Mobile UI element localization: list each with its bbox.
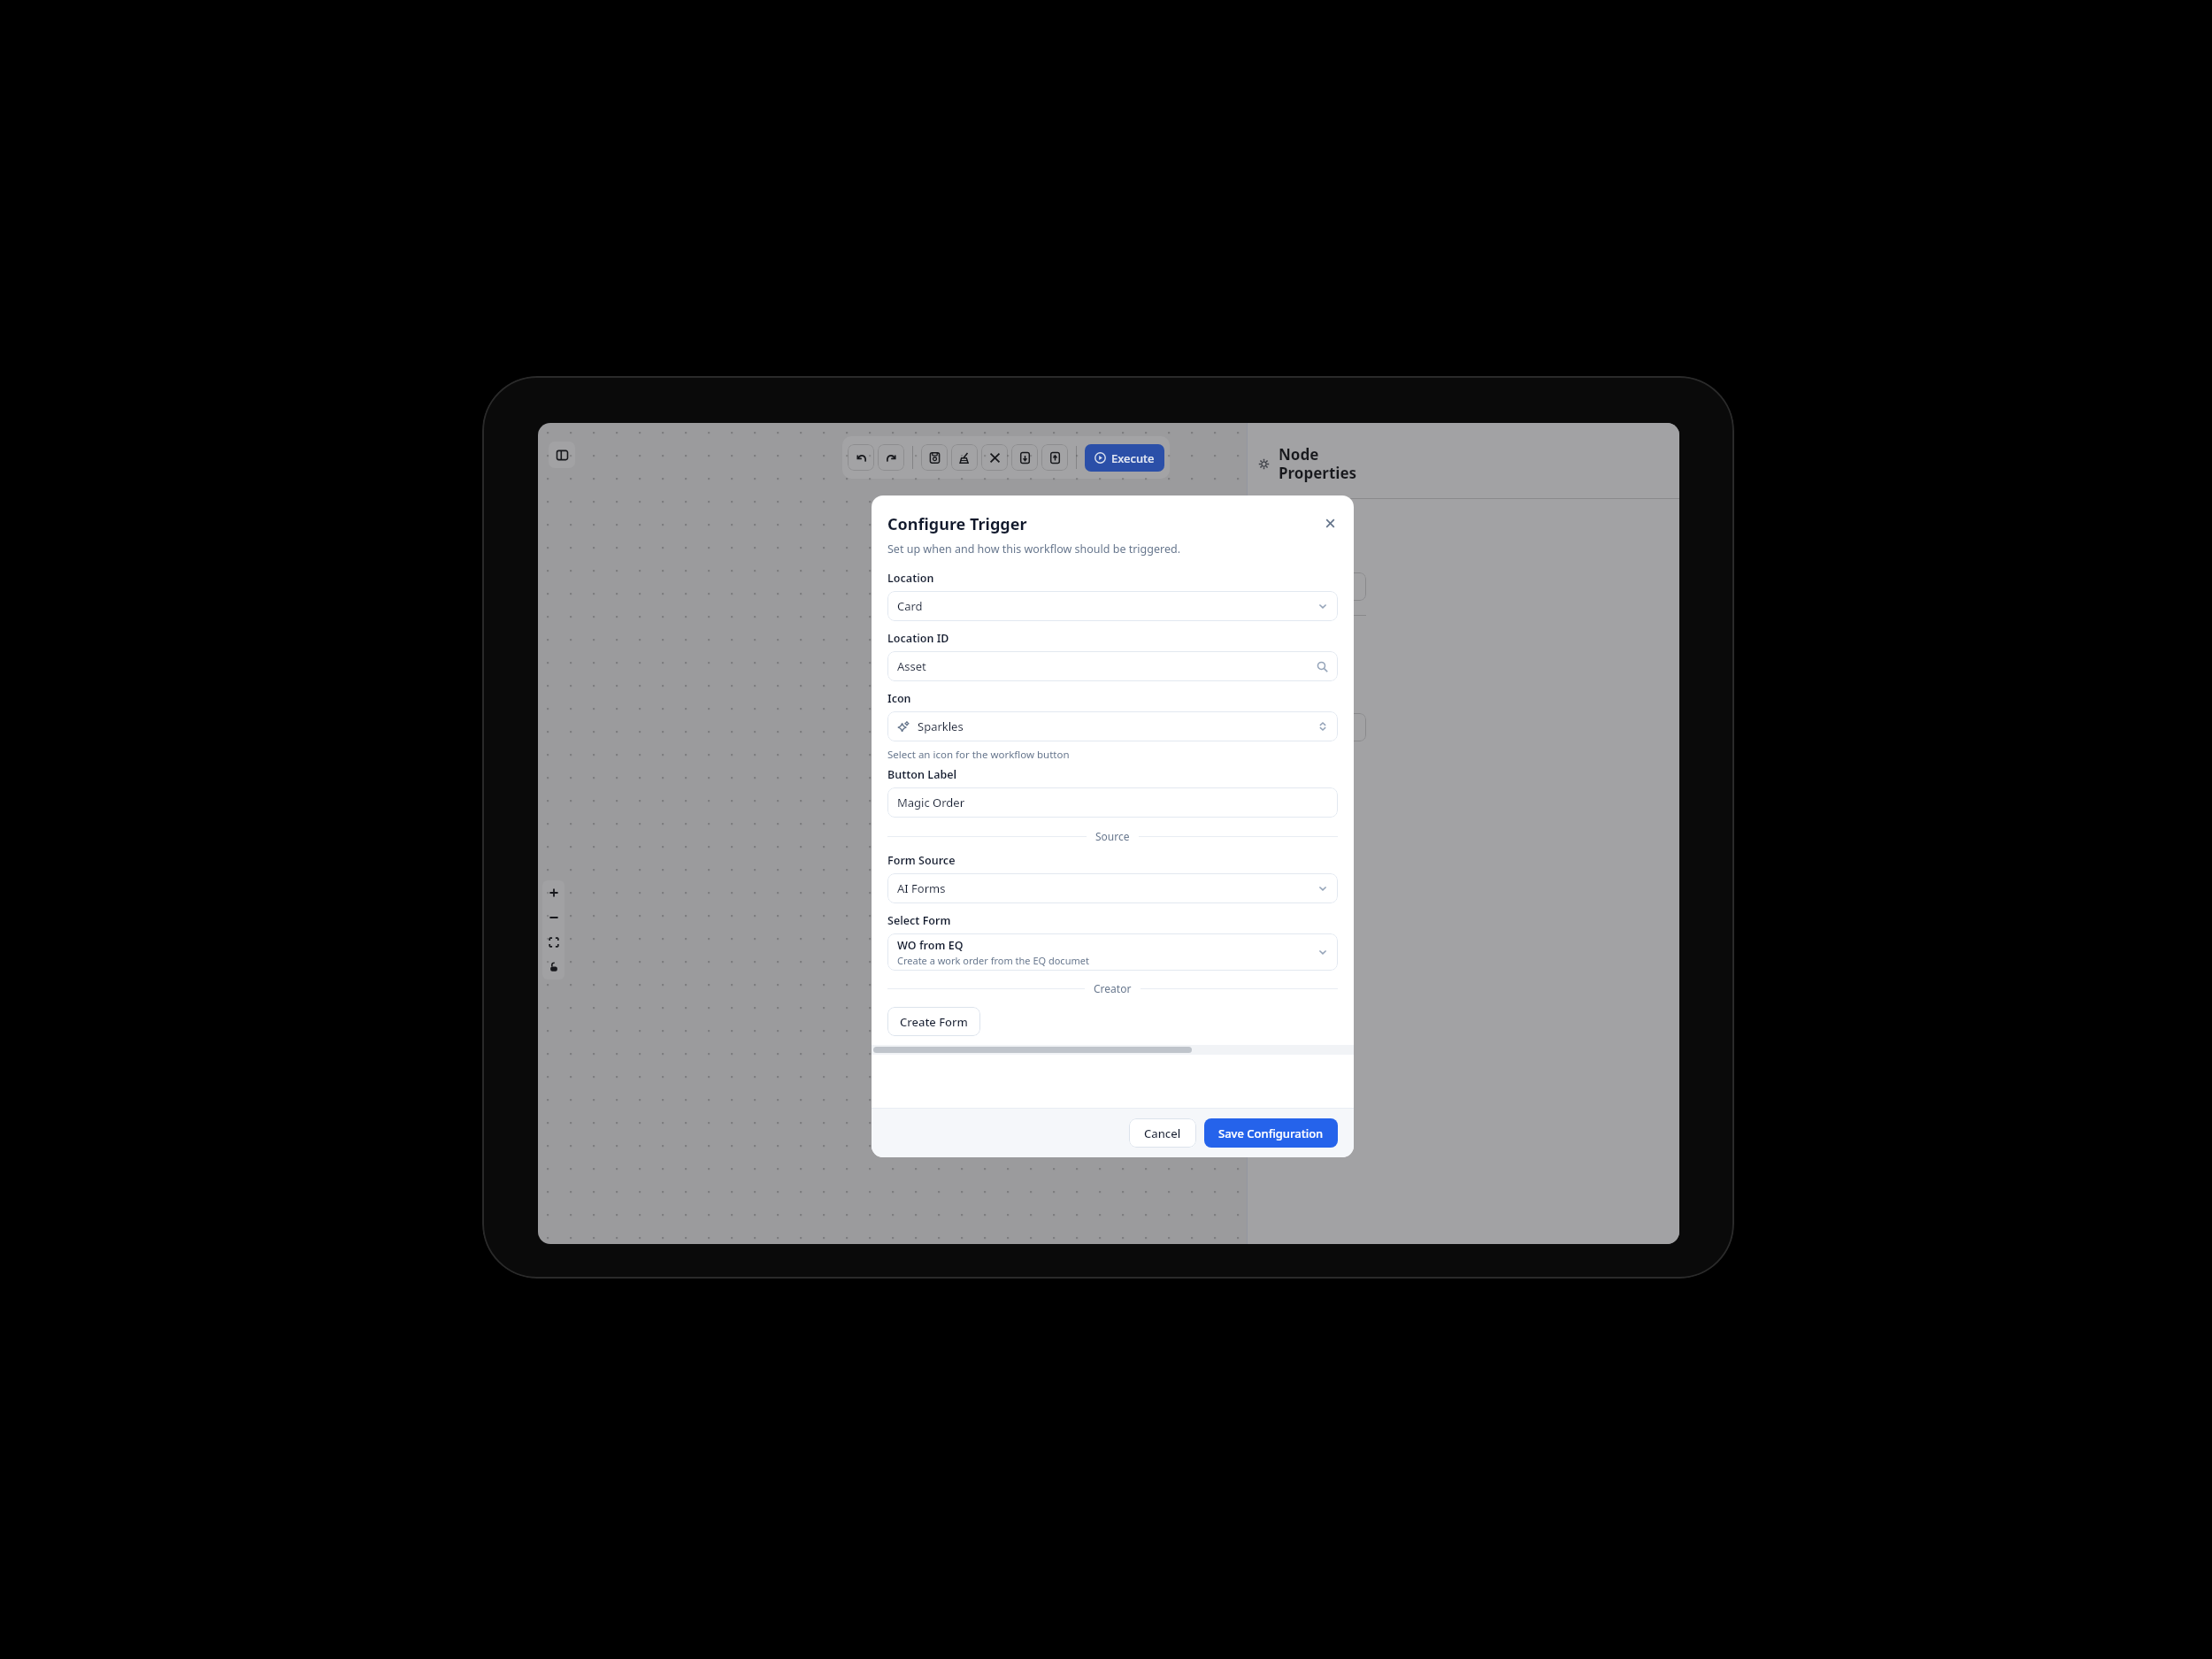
- button[interactable]: Clear: [981, 444, 1008, 471]
- button[interactable]: AI Forms: [897, 873, 1328, 903]
- staticText: Execute: [1111, 450, 1155, 466]
- staticText: Form: [1268, 681, 1294, 695]
- staticText: Set up when and how this workflow should…: [887, 541, 1181, 557]
- button[interactable]: Zoom out: [542, 905, 565, 930]
- staticText: Select an icon for the workflow button: [887, 748, 1070, 762]
- button[interactable]: Asset: [897, 651, 1328, 681]
- button[interactable]: Zoom in: [542, 880, 565, 905]
- button[interactable]: [1241, 786, 1253, 805]
- button[interactable]: Magic Order: [897, 787, 1328, 818]
- staticText: Magic Order: [897, 795, 965, 810]
- button[interactable]: Redo: [878, 444, 904, 471]
- staticText: Select Form: [887, 913, 951, 928]
- staticText: Creates a work order from a problem desc…: [991, 687, 1200, 741]
- button[interactable]: Close: [1320, 513, 1340, 533]
- staticText: Work Order: [1101, 734, 1159, 749]
- staticText: Trigger Type: [1260, 654, 1323, 668]
- staticText: Node Properties: [1279, 444, 1357, 483]
- button[interactable]: Save: [921, 444, 948, 471]
- staticText: Asset: [897, 658, 926, 674]
- button[interactable]: WO from EQ: [897, 933, 1328, 971]
- staticText: Configure Trigger: [887, 513, 1027, 535]
- button[interactable]: Card: [897, 591, 1328, 621]
- staticText: Create a work order from the EQ documet: [897, 954, 1089, 967]
- staticText: Creator: [1094, 981, 1132, 995]
- button[interactable]: Sparkles: [897, 711, 1328, 741]
- staticText: Form Source: [887, 853, 956, 868]
- staticText: AI Forms: [897, 880, 946, 896]
- staticText: Cancel: [1144, 1125, 1181, 1141]
- button[interactable]: Work Order Ge…: [980, 642, 1209, 782]
- staticText: Enter custo: [1268, 580, 1325, 594]
- staticText: Location: [887, 571, 934, 586]
- button[interactable]: Enter custo: [1260, 572, 1366, 601]
- button[interactable]: Fit to screen: [542, 930, 565, 955]
- button[interactable]: Undo: [848, 444, 874, 471]
- button[interactable]: Cancel: [1144, 1118, 1181, 1148]
- staticText: Button Label: [887, 767, 957, 782]
- button[interactable]: Toggle sidebar: [549, 442, 575, 468]
- button[interactable]: Save Configuration: [1218, 1118, 1324, 1148]
- button[interactable]: Import: [1011, 444, 1038, 471]
- button[interactable]: Clean up: [951, 444, 978, 471]
- button[interactable]: Create Form: [900, 1007, 968, 1036]
- button[interactable]: Lock canvas: [542, 955, 565, 979]
- button[interactable]: Execute: [1094, 444, 1155, 472]
- staticText: Create Form: [900, 1014, 968, 1030]
- staticText: WO from EQ: [897, 938, 964, 953]
- button[interactable]: Form: [1268, 674, 1317, 703]
- staticText: Card: [897, 598, 923, 614]
- staticText: Location ID: [887, 631, 949, 646]
- staticText: Source: [1095, 829, 1130, 843]
- staticText: Sparkles: [918, 718, 964, 734]
- staticText: Icon: [887, 691, 911, 706]
- button[interactable]: Export: [1041, 444, 1068, 471]
- staticText: Save Configuration: [1218, 1125, 1324, 1141]
